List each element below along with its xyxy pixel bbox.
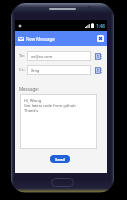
staticText: Cc: bbox=[19, 67, 27, 73]
button[interactable]: Close bbox=[97, 35, 104, 42]
staticText: 1:48 bbox=[96, 23, 105, 29]
staticText: To: bbox=[19, 53, 27, 59]
button[interactable]: Choose contact bbox=[93, 51, 103, 61]
button[interactable]: Choose contact bbox=[93, 65, 103, 75]
button[interactable]: Hi, Wong bbox=[20, 94, 97, 149]
staticText: Message: bbox=[19, 86, 39, 92]
staticText: New Message bbox=[26, 36, 55, 42]
button[interactable]: Send bbox=[50, 155, 70, 163]
button[interactable]: xx@xx.com bbox=[27, 51, 91, 61]
staticText: Get latest code from github bbox=[24, 103, 76, 108]
staticText: Send bbox=[55, 157, 65, 162]
button[interactable]: Xing bbox=[27, 65, 91, 75]
staticText: Thank's bbox=[24, 108, 39, 113]
staticText: Hi, Wong bbox=[24, 98, 42, 103]
staticText: Xing bbox=[31, 68, 40, 73]
staticText: xx@xx.com bbox=[31, 54, 53, 59]
